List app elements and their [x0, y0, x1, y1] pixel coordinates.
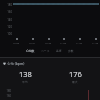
staticText: 高度	[56, 49, 62, 53]
staticText: 11:24	[76, 41, 83, 44]
staticText: 160	[0, 10, 12, 14]
staticText: 10:42	[45, 41, 52, 44]
staticText: 176	[69, 69, 82, 79]
staticText: 120	[0, 25, 12, 29]
staticText: 10:00	[13, 41, 20, 44]
staticText: 11:03	[60, 41, 67, 44]
staticText: 11:45	[92, 41, 99, 44]
staticText: 100	[0, 32, 12, 36]
staticText: 160	[0, 94, 11, 98]
staticText: 心拍 (bpm)	[7, 61, 25, 66]
button[interactable]: 高度	[55, 48, 63, 54]
staticText: 10:21	[29, 41, 36, 44]
button[interactable]: ペース	[40, 48, 51, 54]
staticText: 138	[19, 69, 32, 79]
staticText: 最大	[72, 80, 78, 84]
staticText: 心拍数	[26, 49, 35, 53]
button[interactable]: 138	[0, 69, 50, 84]
button[interactable]: 歩数	[67, 48, 75, 54]
staticText: ペース	[41, 49, 50, 53]
button[interactable]: 176	[50, 69, 100, 84]
staticText: 180	[0, 3, 12, 7]
staticText: 180	[0, 89, 11, 93]
staticText: 平均	[22, 80, 28, 84]
staticText: 140	[0, 18, 12, 22]
button[interactable]: 心拍数	[25, 48, 36, 54]
staticText: 歩数	[68, 49, 74, 53]
